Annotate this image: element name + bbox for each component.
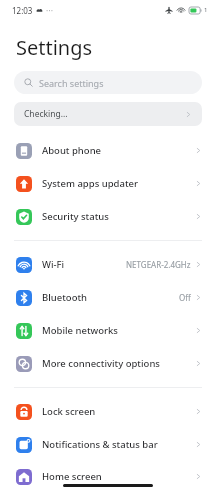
staticText: 1 bbox=[204, 6, 208, 14]
staticText: Mobile networks bbox=[42, 324, 118, 337]
staticText: NETGEAR-2.4GHz bbox=[126, 259, 191, 270]
button[interactable]: Lock screen bbox=[0, 395, 216, 428]
button[interactable]: Notifications & status bar bbox=[0, 428, 216, 461]
button[interactable]: Security status bbox=[0, 200, 216, 233]
staticText: System apps updater bbox=[42, 177, 138, 190]
button[interactable]: Bluetooth bbox=[0, 281, 216, 314]
staticText: Notifications & status bar bbox=[42, 438, 158, 451]
staticText: Checking... bbox=[24, 108, 68, 120]
button[interactable]: Checking... bbox=[14, 102, 202, 126]
staticText: More connectivity options bbox=[42, 357, 160, 370]
staticText: Search settings bbox=[39, 77, 104, 89]
button[interactable]: Wi-Fi bbox=[0, 248, 216, 281]
staticText: About phone bbox=[42, 144, 102, 157]
staticText: Security status bbox=[42, 210, 109, 223]
button[interactable]: Mobile networks bbox=[0, 314, 216, 347]
button[interactable]: More connectivity options bbox=[0, 347, 216, 380]
staticText: Lock screen bbox=[42, 405, 96, 418]
staticText: Off bbox=[179, 292, 191, 303]
staticText: Home screen bbox=[42, 470, 102, 483]
button[interactable]: Search settings bbox=[14, 71, 202, 94]
staticText: 12:03 bbox=[12, 5, 33, 16]
button[interactable]: About phone bbox=[0, 134, 216, 167]
staticText: Bluetooth bbox=[42, 291, 88, 304]
staticText: Wi-Fi bbox=[42, 258, 65, 271]
button[interactable]: Home screen bbox=[0, 461, 216, 492]
staticText: Settings bbox=[16, 34, 93, 61]
button[interactable]: System apps updater bbox=[0, 167, 216, 200]
